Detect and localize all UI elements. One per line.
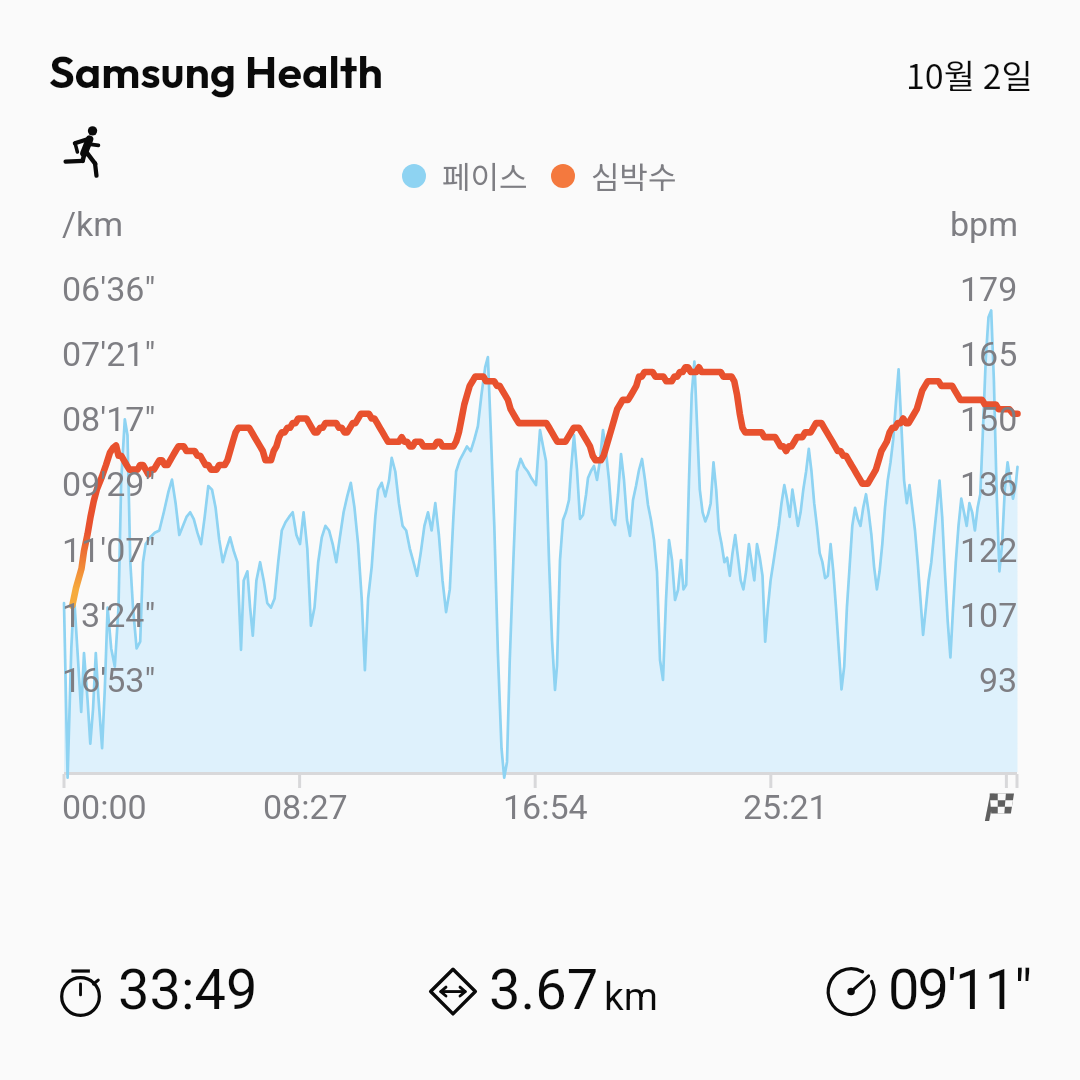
staticText: 107 [960,595,1018,635]
staticText: /km [62,204,124,244]
staticText: 25:21 [743,787,828,827]
staticText: 00:00 [62,787,147,827]
staticText: 150 [960,399,1018,439]
staticText: 10월 2일 [906,50,1033,99]
staticText: 08'17" [62,399,156,439]
button[interactable]: 페이스 [402,153,677,198]
staticText: 3.67 [489,957,599,1023]
staticText: 11'07" [62,530,156,570]
staticText: Samsung Health [49,43,383,100]
staticText: 93 [979,660,1018,700]
staticText: 09'29" [62,464,156,504]
button[interactable]: 09'11" [823,957,1031,1023]
other: Finish [983,793,1014,821]
staticText: 122 [960,530,1018,570]
staticText: 179 [960,269,1018,309]
staticText: 16'53" [62,660,156,700]
staticText: 13'24" [62,595,156,635]
staticText: 33:49 [118,957,258,1023]
staticText: 심박수 [591,153,677,198]
button[interactable]: 33:49 [54,957,258,1023]
staticText: bpm [950,204,1018,244]
staticText: 06'36" [62,269,156,309]
other: Running workout [63,125,99,177]
staticText: 08:27 [263,787,348,827]
staticText: 09'11" [888,957,1031,1023]
staticText: km [604,974,658,1020]
staticText: 페이스 [442,153,528,198]
button[interactable]: 3.67 [427,957,658,1023]
staticText: 16:54 [503,787,588,827]
staticText: 165 [960,334,1018,374]
staticText: 07'21" [62,334,156,374]
staticText: 136 [960,464,1018,504]
